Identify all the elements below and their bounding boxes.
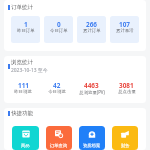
staticText: 资质档案 [83, 143, 101, 148]
staticText: 累计激活 [116, 28, 134, 34]
staticText: 111 [18, 81, 29, 90]
button[interactable]: 资质档案 [79, 126, 105, 150]
button[interactable]: 快捷功能 [8, 110, 33, 117]
staticText: 266 [86, 20, 97, 29]
staticText: 2023-10-13 至今 [11, 67, 48, 74]
button[interactable]: 107 [110, 16, 139, 43]
button[interactable]: 订单查询 [46, 126, 72, 150]
staticText: 0 [57, 20, 61, 29]
button[interactable]: 4463 [74, 81, 109, 96]
button[interactable]: 42 [40, 81, 74, 96]
staticText: 42 [53, 81, 61, 90]
staticText: 财务 [121, 143, 130, 148]
staticText: 商品 [21, 143, 30, 148]
button[interactable]: 财务 [112, 126, 138, 150]
staticText: 累计订单 [83, 28, 101, 34]
staticText: 总点击量 [118, 89, 136, 95]
button[interactable]: 商品 [12, 126, 39, 150]
staticText: 107 [119, 20, 130, 29]
staticText: 昨日浏览 [14, 89, 32, 95]
staticText: 今日浏览 [48, 89, 66, 95]
staticText: 1 [24, 20, 28, 29]
button[interactable]: 3081 [109, 81, 144, 96]
button[interactable]: 1 [11, 16, 40, 43]
staticText: 昨日订单 [17, 28, 35, 34]
button[interactable]: 111 [6, 81, 40, 96]
staticText: 今日订单 [50, 28, 68, 34]
button[interactable]: 订单统计 [8, 4, 33, 11]
staticText: 浏览统计 [11, 59, 33, 66]
staticText: 3081 [119, 81, 134, 90]
staticText: 4463 [84, 81, 99, 90]
button[interactable]: 0 [44, 16, 73, 43]
button[interactable]: 266 [77, 16, 106, 43]
staticText: 总浏览量(PV) [79, 89, 105, 95]
staticText: 订单查询 [50, 143, 68, 148]
staticText: 订单统计 [11, 4, 33, 11]
staticText: 快捷功能 [11, 110, 33, 117]
button[interactable]: 浏览统计 [8, 59, 48, 74]
